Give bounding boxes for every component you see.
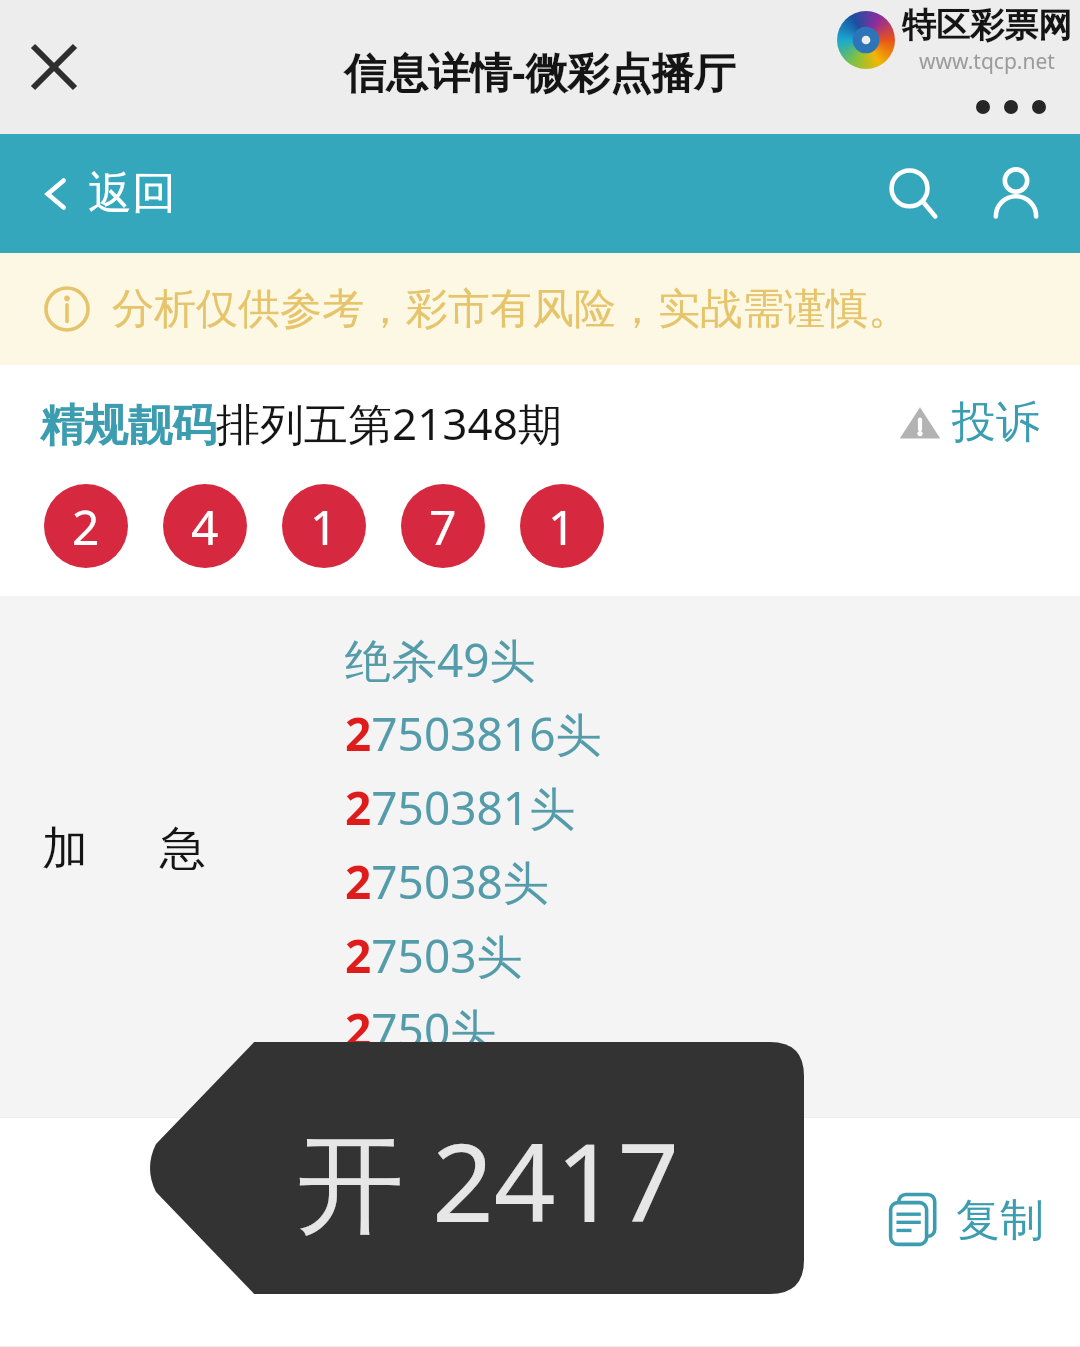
staticText: 7 [429,494,457,559]
staticText: 27503头 [345,924,523,987]
staticText: 精规靓码排列五第21348期 [40,393,562,453]
staticText: 2750381头 [345,776,576,839]
staticText: 275038头 [345,850,549,913]
staticText: 特区彩票网 [902,4,1072,47]
staticText: 投诉 [952,395,1040,450]
button[interactable]: Close [22,35,86,99]
button[interactable]: 复制 [880,1185,1050,1255]
staticText: 2750头 [345,998,497,1061]
staticText: 4 [191,494,219,559]
button[interactable]: Profile [980,158,1052,230]
button[interactable]: 投诉 [892,389,1046,456]
staticText: 2 [72,494,100,559]
button[interactable]: 返回 [34,156,182,231]
staticText: 分析仅供参考，彩市有风险，实战需谨慎。 [112,283,910,336]
staticText: 信息详情-微彩点播厅 [344,43,736,100]
button[interactable]: Search [878,158,950,230]
staticText: 27503816头 [345,702,602,765]
staticText: 返回 [88,166,176,221]
staticText: 1 [548,494,576,559]
button[interactable]: More options [972,96,1050,118]
button[interactable]: 2 [44,484,128,568]
staticText: www.tqcp.net [919,47,1055,76]
staticText: 复制 [956,1193,1044,1248]
button[interactable]: 1 [282,484,366,568]
staticText: 1 [310,494,338,559]
button[interactable]: 4 [163,484,247,568]
staticText: 开 2417 [296,1107,680,1255]
staticText: 加 急 [42,815,206,878]
button[interactable]: 7 [401,484,485,568]
button[interactable]: 1 [520,484,604,568]
staticText: 绝杀49头 [345,628,536,691]
button[interactable]: 开 2417 [146,1042,804,1294]
